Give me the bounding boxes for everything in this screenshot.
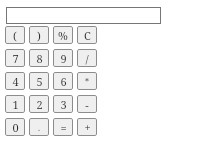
staticText: .	[38, 122, 40, 133]
staticText: %	[58, 28, 68, 43]
button[interactable]: =	[53, 118, 73, 136]
staticText: 4	[12, 74, 19, 89]
button[interactable]: /	[77, 49, 97, 67]
staticText: 6	[60, 74, 67, 89]
staticText: -	[85, 97, 89, 112]
button[interactable]: 6	[53, 72, 73, 90]
staticText: 5	[36, 74, 43, 89]
button[interactable]: 5	[29, 72, 49, 90]
button[interactable]: 8	[29, 49, 49, 67]
staticText: =	[60, 120, 67, 135]
button[interactable]: 1	[5, 95, 25, 113]
button[interactable]: 0	[5, 118, 25, 136]
button[interactable]: *	[77, 72, 97, 90]
staticText: 7	[12, 51, 19, 66]
button[interactable]: +	[77, 118, 97, 136]
staticText: 8	[36, 51, 43, 66]
button[interactable]: %	[53, 26, 73, 44]
button[interactable]: )	[29, 26, 49, 44]
staticText: C	[84, 28, 91, 43]
staticText: 0	[12, 120, 19, 135]
staticText: 2	[36, 97, 43, 112]
button[interactable]: (	[5, 26, 25, 44]
button[interactable]: 3	[53, 95, 73, 113]
button[interactable]: C	[77, 26, 97, 44]
button[interactable]: 2	[29, 95, 49, 113]
staticText: )	[37, 28, 41, 43]
button[interactable]: .	[29, 118, 49, 136]
staticText: (	[13, 28, 17, 43]
button[interactable]: Expression input	[6, 7, 161, 24]
button[interactable]: 7	[5, 49, 25, 67]
staticText: 1	[12, 97, 19, 112]
staticText: 3	[60, 97, 67, 112]
staticText: 9	[60, 51, 67, 66]
staticText: *	[85, 76, 89, 87]
button[interactable]: -	[77, 95, 97, 113]
staticText: +	[84, 120, 91, 135]
staticText: /	[85, 51, 89, 66]
button[interactable]: 4	[5, 72, 25, 90]
button[interactable]: 9	[53, 49, 73, 67]
